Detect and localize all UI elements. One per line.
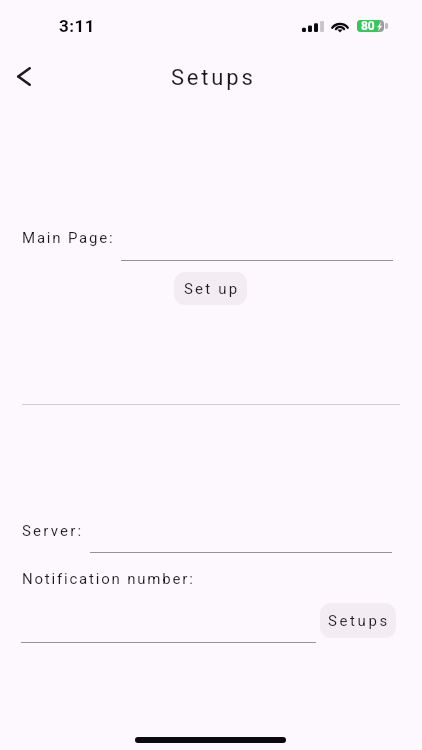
button[interactable]: Back (4, 56, 44, 96)
button[interactable]: Setups (320, 603, 396, 638)
staticText: Main Page: (22, 229, 115, 247)
staticText: Setups (171, 65, 256, 91)
button[interactable]: Set up (174, 272, 247, 305)
staticText: Notification number: (22, 570, 195, 588)
staticText: 80 (361, 19, 375, 31)
staticText: 3:11 (59, 16, 96, 36)
staticText: Setups (328, 612, 390, 630)
staticText: Server: (22, 522, 84, 540)
staticText: Set up (184, 280, 240, 298)
